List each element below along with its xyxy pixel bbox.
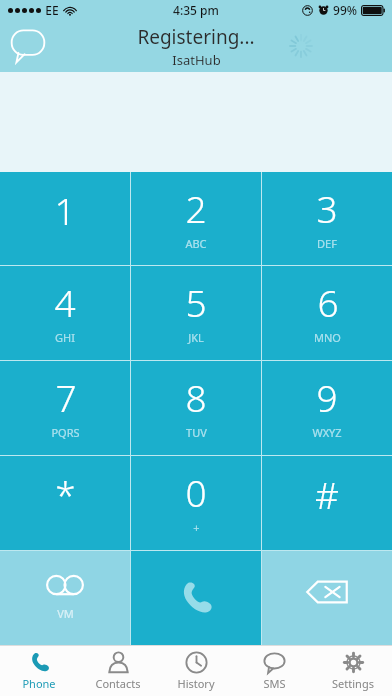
- button[interactable]: #: [262, 456, 392, 550]
- staticText: VM: [57, 606, 74, 621]
- button[interactable]: Contacts: [79, 646, 157, 696]
- staticText: DEF: [317, 236, 337, 251]
- button[interactable]: 6: [262, 266, 392, 360]
- button[interactable]: 5: [131, 266, 261, 360]
- button[interactable]: Settings: [314, 646, 392, 696]
- button[interactable]: 8: [131, 361, 261, 455]
- button[interactable]: Messages: [6, 24, 50, 68]
- staticText: 6: [317, 277, 339, 327]
- staticText: 8: [185, 372, 207, 422]
- button[interactable]: History: [157, 646, 235, 696]
- staticText: Registering...: [137, 24, 255, 50]
- button[interactable]: 7: [0, 361, 130, 455]
- staticText: 4: [54, 277, 76, 327]
- staticText: Settings: [332, 676, 374, 691]
- button[interactable]: *: [0, 456, 130, 550]
- staticText: 5: [185, 277, 207, 327]
- button[interactable]: 0: [131, 456, 261, 550]
- staticText: 99%: [333, 2, 357, 18]
- staticText: 7: [55, 372, 77, 422]
- button[interactable]: Call: [131, 551, 261, 645]
- staticText: EE: [45, 2, 59, 18]
- button[interactable]: SMS: [235, 646, 313, 696]
- staticText: 0: [185, 467, 207, 517]
- staticText: WXYZ: [312, 425, 342, 440]
- button[interactable]: Backspace: [262, 551, 392, 645]
- button[interactable]: 2: [131, 172, 261, 265]
- staticText: *: [55, 469, 76, 519]
- staticText: 4:35 pm: [173, 2, 219, 18]
- button[interactable]: 4: [0, 266, 130, 360]
- staticText: History: [177, 676, 215, 691]
- staticText: JKL: [188, 330, 204, 345]
- staticText: +: [193, 520, 200, 535]
- staticText: #: [315, 469, 339, 519]
- staticText: 9: [316, 372, 338, 422]
- staticText: 2: [185, 183, 207, 233]
- button[interactable]: 9: [262, 361, 392, 455]
- staticText: 3: [316, 183, 338, 233]
- staticText: Contacts: [95, 676, 141, 691]
- button[interactable]: Voicemail: [0, 551, 130, 645]
- button[interactable]: Phone: [0, 646, 78, 696]
- staticText: ABC: [185, 236, 207, 251]
- staticText: SMS: [263, 676, 286, 691]
- staticText: MNO: [314, 330, 341, 345]
- staticText: IsatHub: [172, 51, 221, 69]
- button[interactable]: 1: [0, 172, 130, 265]
- staticText: TUV: [186, 425, 207, 440]
- staticText: GHI: [55, 330, 75, 345]
- button[interactable]: 3: [262, 172, 392, 265]
- staticText: PQRS: [51, 425, 80, 440]
- staticText: 1: [54, 185, 76, 235]
- staticText: Phone: [22, 676, 56, 691]
